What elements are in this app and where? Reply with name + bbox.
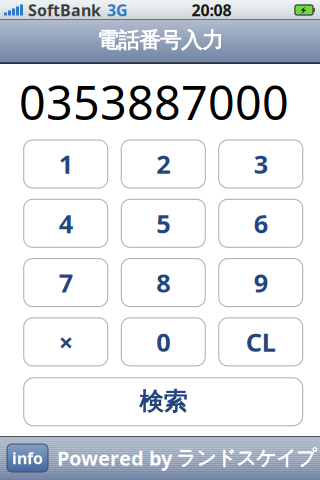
button[interactable]: 4: [24, 199, 108, 247]
staticText: CL: [246, 325, 276, 359]
button[interactable]: 検索: [24, 378, 303, 426]
staticText: 5: [156, 206, 170, 240]
staticText: 4: [59, 206, 73, 240]
staticText: 9: [254, 266, 268, 299]
button[interactable]: 2: [121, 140, 205, 188]
button[interactable]: Info: [7, 444, 48, 472]
button[interactable]: 7: [24, 259, 108, 307]
staticText: ランドスケイプ: [176, 446, 316, 470]
staticText: 0: [156, 325, 170, 359]
button[interactable]: 1: [24, 140, 108, 188]
staticText: 1: [59, 147, 73, 181]
staticText: SoftBank: [28, 0, 101, 21]
button[interactable]: ×: [24, 318, 108, 366]
button[interactable]: 6: [219, 199, 303, 247]
staticText: 2: [156, 147, 170, 181]
button[interactable]: CL: [219, 318, 303, 366]
button[interactable]: 0: [121, 318, 205, 366]
staticText: 8: [156, 266, 170, 299]
staticText: 3G: [107, 0, 128, 21]
staticText: 3: [254, 147, 268, 181]
staticText: Powered by: [57, 445, 172, 471]
button[interactable]: 3: [219, 140, 303, 188]
staticText: info: [12, 447, 43, 469]
button[interactable]: 9: [219, 259, 303, 307]
staticText: 20:08: [191, 0, 231, 21]
staticText: 7: [59, 266, 73, 299]
staticText: 電話番号入力: [97, 27, 223, 54]
staticText: 0353887000: [19, 71, 289, 133]
button[interactable]: 5: [121, 199, 205, 247]
staticText: 6: [254, 206, 268, 240]
button[interactable]: 8: [121, 259, 205, 307]
staticText: ×: [59, 325, 73, 359]
staticText: 検索: [139, 387, 187, 417]
